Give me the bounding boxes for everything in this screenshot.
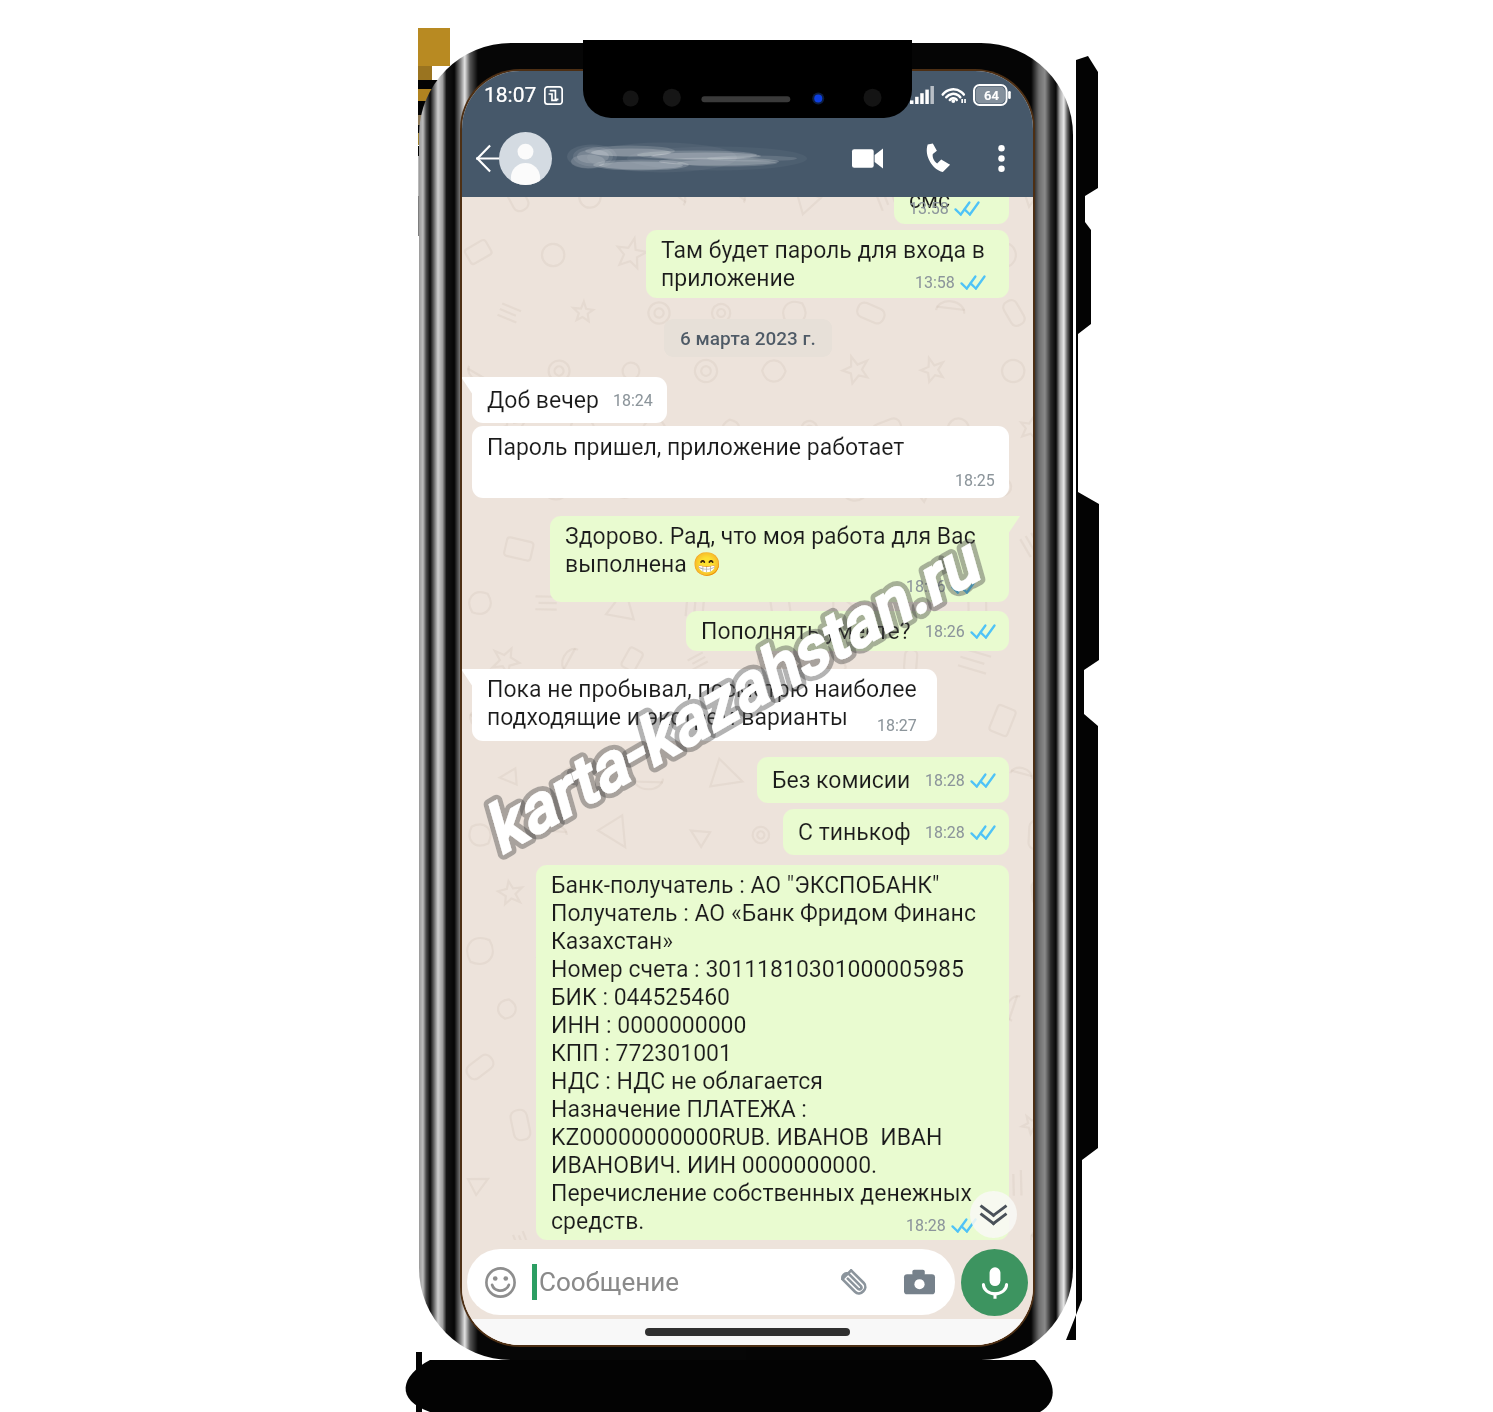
staticText: Пополнять умеете?	[701, 618, 911, 645]
staticText: Там будет пароль для входа в приложение	[661, 237, 985, 292]
staticText: 18:28	[906, 1216, 946, 1235]
button[interactable]: Record voice message	[961, 1249, 1028, 1316]
staticText: Без комисии	[772, 767, 911, 794]
staticText: Доб вечер	[487, 387, 599, 414]
staticText: 13:58	[909, 199, 949, 218]
staticText: 18:27	[877, 716, 917, 735]
button[interactable]: Пароль пришел, приложение работает	[472, 426, 1009, 498]
staticText: 64	[984, 88, 999, 103]
button[interactable]: Там будет пароль для входа в приложение	[646, 230, 1009, 298]
staticText: 18:26	[925, 622, 965, 641]
button[interactable]: Voice call	[914, 134, 962, 182]
button[interactable]: Contact name	[567, 133, 841, 183]
staticText: Сообщение	[539, 1267, 679, 1297]
button[interactable]: С тинькоф	[783, 809, 1009, 855]
staticText: karta-kazahstan.ru	[470, 524, 991, 870]
button[interactable]: Пока не пробывал, посмотрю наиболее подх…	[472, 669, 937, 741]
staticText: 18:24	[613, 391, 653, 410]
staticText: 18:28	[925, 823, 965, 842]
button[interactable]: Доб вечер	[472, 377, 667, 423]
button[interactable]: Сообщение	[467, 1249, 955, 1315]
button[interactable]: More options	[981, 138, 1021, 178]
button[interactable]: Здорово. Рад, что моя работа для Вас вып…	[550, 516, 1009, 602]
staticText: Здорово. Рад, что моя работа для Вас вып…	[565, 523, 976, 578]
button[interactable]: Back	[468, 136, 512, 180]
staticText: 18:26	[906, 577, 946, 596]
staticText: Пока не пробывал, посмотрю наиболее подх…	[487, 676, 917, 731]
button[interactable]: Scroll to bottom	[970, 1191, 1017, 1238]
staticText: 18:28	[925, 771, 965, 790]
staticText: С тинькоф	[798, 819, 911, 846]
staticText: 6 марта 2023 г.	[680, 327, 816, 349]
staticText: 13:58	[915, 273, 955, 292]
button[interactable]: 6 марта 2023 г.	[664, 319, 832, 357]
staticText: karta-kazahstan.ru	[470, 524, 991, 870]
staticText: смс	[909, 187, 951, 214]
button[interactable]: Банк-получатель : АО "ЭКСПОБАНК" Получат…	[536, 865, 1009, 1240]
staticText: 18:07	[484, 83, 537, 108]
button[interactable]: Video call	[841, 132, 893, 184]
button[interactable]: Без комисии	[757, 757, 1009, 803]
button[interactable]: смс	[894, 180, 1009, 224]
staticText: 18:25	[955, 471, 995, 490]
staticText: Банк-получатель : АО "ЭКСПОБАНК" Получат…	[551, 872, 976, 1235]
button[interactable]: Пополнять умеете?	[686, 611, 1009, 651]
staticText: Пароль пришел, приложение работает	[487, 434, 905, 461]
